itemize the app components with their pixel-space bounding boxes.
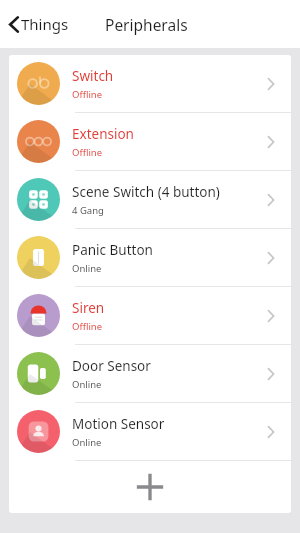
button[interactable]: Extension — [9, 113, 291, 170]
button[interactable]: Door Sensor — [9, 345, 291, 402]
staticText: Online — [72, 378, 102, 391]
staticText: Offline — [72, 146, 103, 159]
button[interactable]: Switch — [9, 55, 291, 112]
staticText: Door Sensor — [72, 357, 151, 375]
staticText: Extension — [72, 125, 134, 143]
staticText: Offline — [72, 88, 103, 101]
button[interactable]: Motion Sensor — [9, 403, 291, 460]
staticText: Online — [72, 262, 102, 275]
staticText: Online — [72, 436, 102, 449]
button[interactable]: Panic Button — [9, 229, 291, 286]
staticText: Scene Switch (4 button) — [72, 183, 220, 201]
staticText: Peripherals — [105, 14, 188, 35]
staticText: Offline — [72, 320, 103, 333]
button[interactable]: Scene Switch (4 button) — [9, 171, 291, 228]
button[interactable]: Siren — [9, 287, 291, 344]
staticText: Siren — [72, 299, 105, 317]
staticText: 4 Gang — [72, 204, 104, 217]
staticText: Panic Button — [72, 241, 153, 259]
button[interactable]: Things — [5, 9, 73, 39]
staticText: Motion Sensor — [72, 415, 165, 433]
staticText: Switch — [72, 67, 114, 85]
staticText: Things — [21, 14, 69, 34]
button[interactable]: Add peripheral — [9, 461, 291, 513]
